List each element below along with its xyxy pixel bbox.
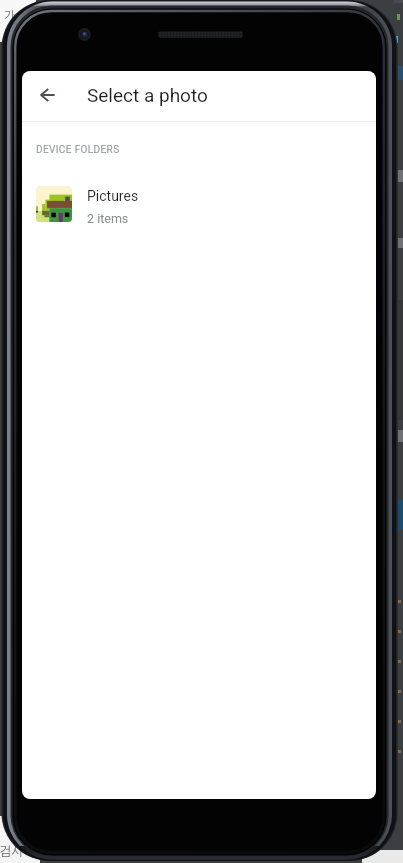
staticText: 2 items bbox=[87, 211, 129, 226]
button[interactable]: Pictures bbox=[22, 174, 376, 230]
button[interactable]: Back bbox=[27, 75, 67, 115]
staticText: Select a photo bbox=[87, 84, 208, 106]
staticText: 가 bbox=[4, 10, 16, 22]
staticText: DEVICE FOLDERS bbox=[36, 144, 120, 156]
staticText: Pictures bbox=[87, 188, 139, 204]
staticText: 검사 bbox=[0, 845, 24, 858]
